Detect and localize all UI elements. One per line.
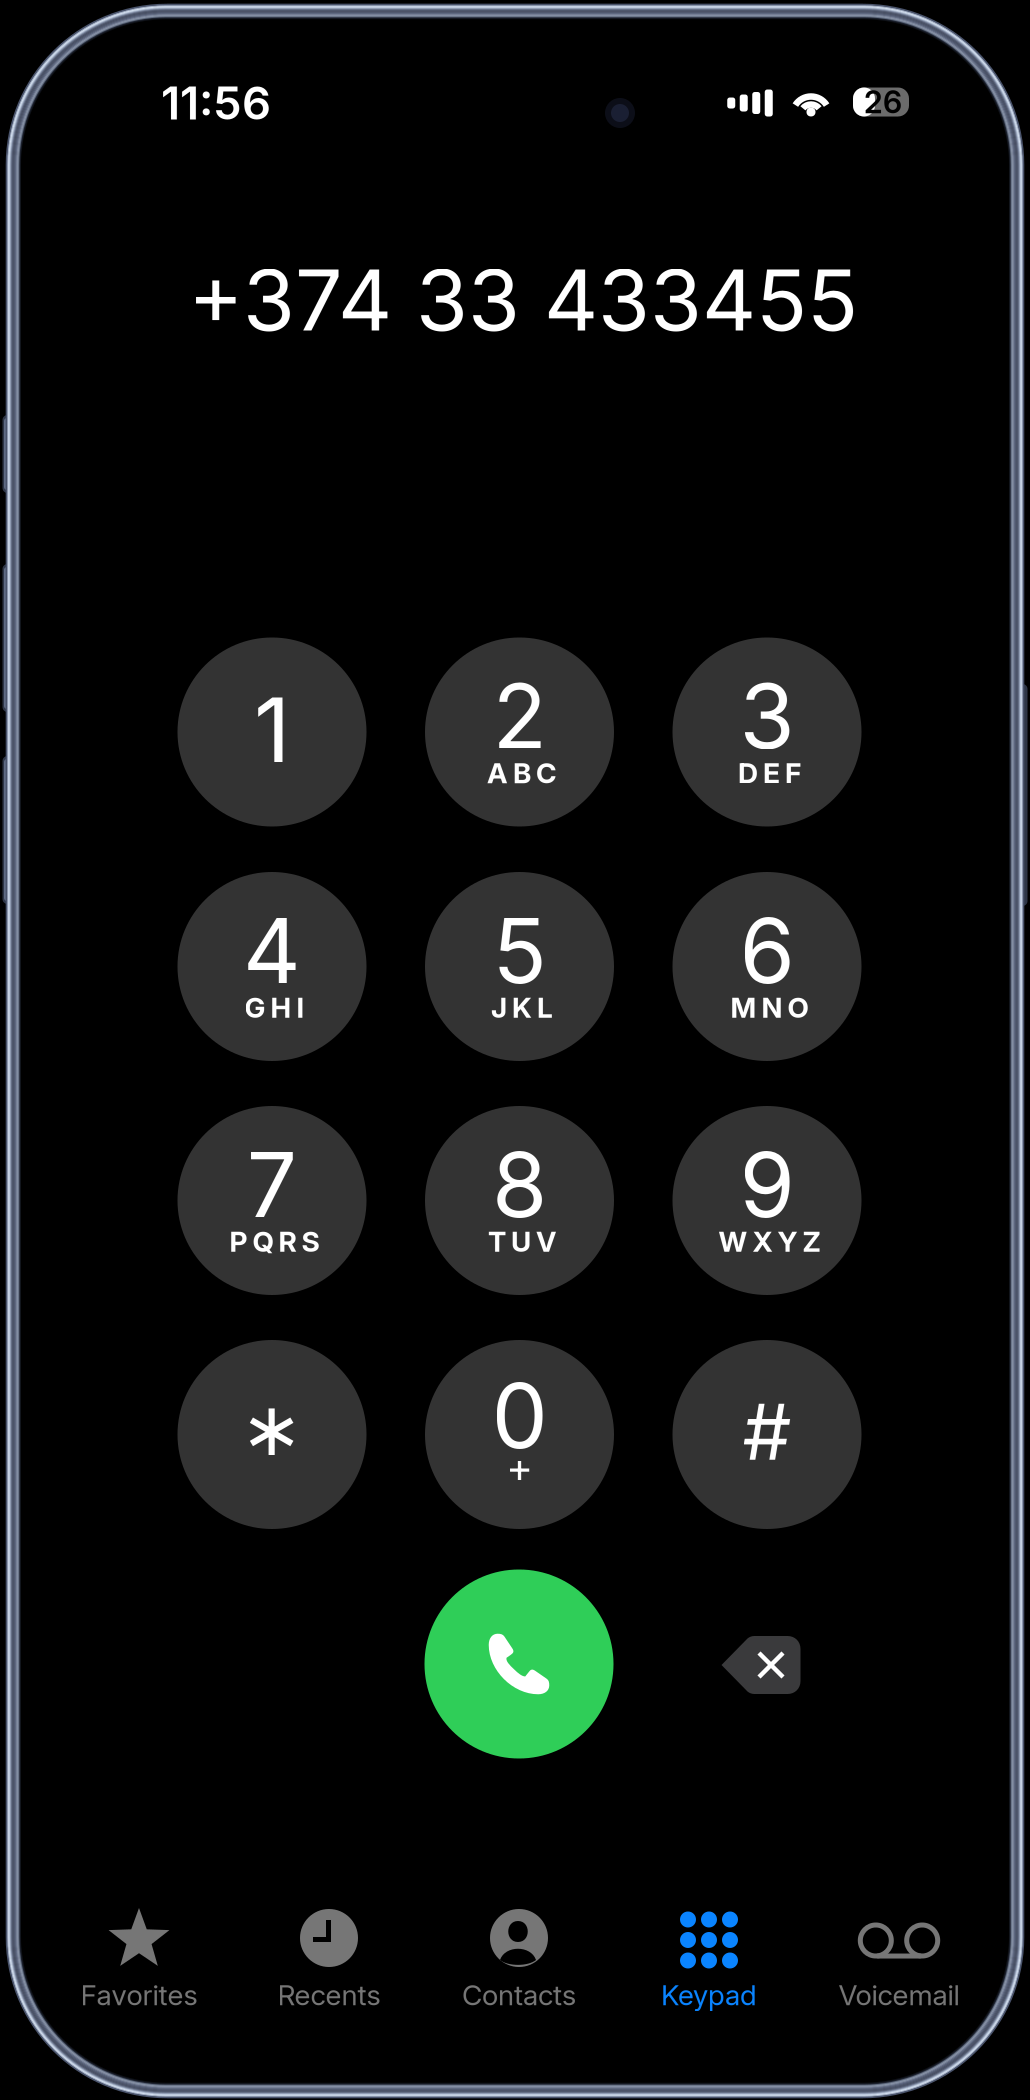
button[interactable]: 0 — [425, 1340, 614, 1529]
button[interactable]: Keypad — [614, 1905, 804, 2023]
staticText: 1 — [254, 676, 290, 784]
button[interactable]: 7 — [177, 1106, 366, 1295]
staticText: DEF — [738, 756, 801, 790]
button[interactable]: 5 — [425, 872, 614, 1061]
staticText: 2 — [492, 662, 546, 770]
button[interactable]: Delete — [721, 1636, 800, 1694]
staticText: 8 — [492, 1130, 547, 1239]
button[interactable]: ∗ — [177, 1340, 366, 1529]
staticText: WXYZ — [718, 1225, 820, 1258]
staticText: PQRS — [229, 1225, 319, 1258]
button[interactable]: Contacts — [424, 1905, 614, 2023]
button[interactable]: Recents — [234, 1905, 424, 2023]
staticText: Favorites — [80, 1978, 197, 2012]
staticText: + — [506, 1442, 532, 1492]
staticText: GHI — [244, 991, 304, 1024]
staticText: 6 — [739, 896, 794, 1005]
button[interactable]: Call — [424, 1569, 613, 1758]
staticText: 11:56 — [161, 76, 271, 130]
staticText: 0 — [491, 1361, 547, 1470]
staticText: Contacts — [462, 1978, 576, 2012]
staticText: 7 — [246, 1130, 297, 1239]
staticText: MNO — [730, 991, 808, 1024]
staticText: Keypad — [661, 1978, 757, 2012]
staticText: # — [742, 1385, 791, 1478]
staticText: 4 — [243, 896, 301, 1005]
button[interactable]: 6 — [672, 872, 861, 1061]
button[interactable]: Favorites — [44, 1905, 234, 2023]
button[interactable]: 2 — [425, 637, 614, 826]
staticText: 26 — [864, 83, 902, 120]
staticText: ∗ — [240, 1386, 303, 1473]
staticText: 3 — [739, 662, 794, 770]
button[interactable]: 8 — [425, 1106, 614, 1295]
staticText: Recents — [277, 1978, 380, 2012]
staticText: ABC — [487, 756, 557, 790]
button[interactable]: # — [672, 1340, 861, 1529]
staticText: 5 — [492, 896, 546, 1005]
staticText: TUV — [488, 1225, 556, 1258]
staticText: 9 — [739, 1130, 794, 1239]
staticText: +374 33 433455 — [188, 249, 858, 351]
button[interactable]: 4 — [177, 872, 366, 1061]
button[interactable]: 9 — [672, 1106, 861, 1295]
button[interactable]: 1 — [177, 637, 366, 826]
staticText: Voicemail — [838, 1978, 959, 2012]
button[interactable]: Voicemail — [804, 1905, 994, 2023]
staticText: JKL — [491, 991, 553, 1024]
button[interactable]: 3 — [672, 637, 861, 826]
